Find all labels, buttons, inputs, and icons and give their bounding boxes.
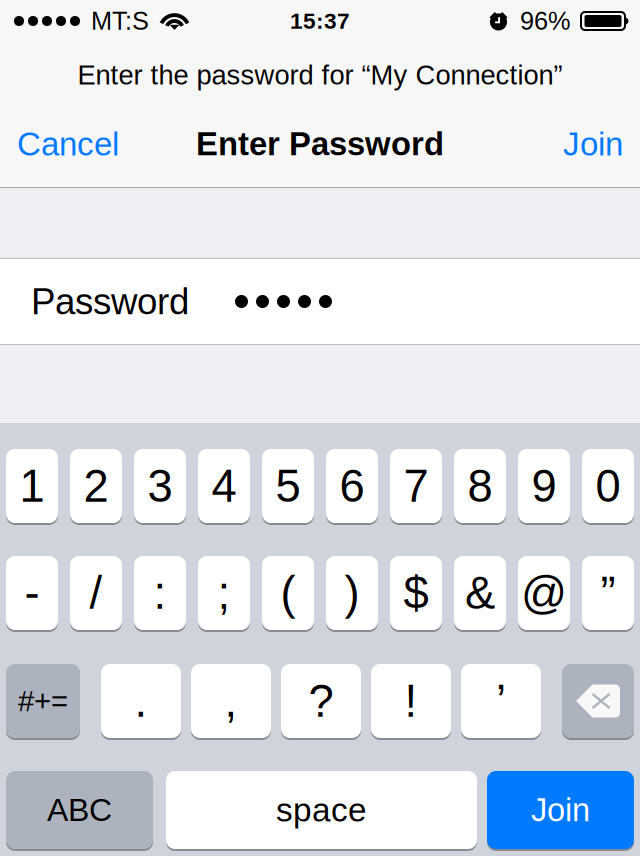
staticText: 7 [403,461,428,511]
button[interactable]: , [191,664,271,740]
button[interactable]: $ [390,556,442,632]
staticText: #+= [18,685,68,717]
staticText: 1 [19,461,44,511]
button[interactable]: 2 [70,449,122,525]
button[interactable]: space [166,771,477,851]
staticText: / [89,568,102,618]
staticText: Enter Password [196,126,444,162]
button[interactable]: 3 [134,449,186,525]
staticText: ; [217,568,230,618]
button[interactable]: 0 [582,449,634,525]
button[interactable]: 1 [6,449,58,525]
staticText: 15:37 [290,8,350,34]
staticText: 4 [211,461,236,511]
button[interactable]: - [6,556,58,632]
button[interactable]: Password [0,259,640,344]
button[interactable]: & [454,556,506,632]
staticText: & [465,568,495,618]
staticText: @ [521,568,567,618]
staticText: ? [308,676,333,726]
button[interactable]: Join [559,113,627,174]
staticText: MT:S [91,7,149,35]
staticText: 6 [339,461,364,511]
button[interactable]: : [134,556,186,632]
button[interactable]: 4 [198,449,250,525]
button[interactable]: ( [262,556,314,632]
button[interactable]: ABC [6,771,153,851]
staticText: : [153,568,166,618]
button[interactable]: ! [371,664,451,740]
staticText: 3 [147,461,172,511]
staticText: ( [280,568,295,618]
staticText: ) [344,568,359,618]
staticText: 9 [531,461,556,511]
button[interactable]: @ [518,556,570,632]
button[interactable]: 7 [390,449,442,525]
staticText: $ [403,568,428,618]
button[interactable]: Join [487,771,634,851]
staticText: Cancel [17,125,119,162]
button[interactable]: ” [582,556,634,632]
staticText: Password [31,281,189,322]
staticText: 5 [275,461,300,511]
button[interactable]: Cancel [13,113,123,174]
staticText: space [276,791,367,829]
staticText: 8 [467,461,492,511]
button[interactable]: ) [326,556,378,632]
staticText: Join [563,125,623,162]
button[interactable]: 9 [518,449,570,525]
button[interactable]: ’ [461,664,541,740]
staticText: Join [531,792,590,828]
button[interactable]: ; [198,556,250,632]
staticText: ! [404,676,417,726]
staticText: ” [600,568,615,618]
button[interactable]: #+= [6,664,80,740]
button[interactable]: 6 [326,449,378,525]
staticText: 0 [595,461,620,511]
staticText: Enter the password for “My Connection” [77,60,562,90]
button[interactable]: 5 [262,449,314,525]
staticText: - [24,568,39,618]
staticText: ’ [496,676,506,726]
staticText: 96% [520,7,571,35]
button[interactable]: Delete [562,664,634,740]
button[interactable]: ? [281,664,361,740]
staticText: 2 [83,461,108,511]
button[interactable]: 8 [454,449,506,525]
button[interactable]: / [70,556,122,632]
staticText: . [134,676,147,726]
staticText: ABC [47,792,112,828]
staticText: , [224,676,237,726]
button[interactable]: . [101,664,181,740]
